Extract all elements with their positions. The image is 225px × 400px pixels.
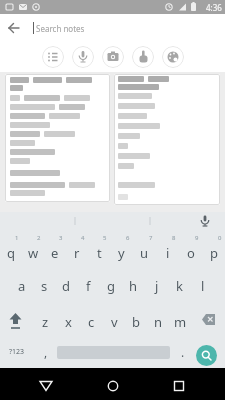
staticText: ,: [44, 344, 48, 360]
button[interactable]: c: [80, 300, 103, 335]
button[interactable]: [201, 212, 225, 230]
button[interactable]: z: [34, 300, 57, 335]
staticText: 0: [218, 234, 222, 242]
button[interactable]: j: [145, 265, 168, 300]
button[interactable]: 9: [179, 230, 202, 265]
staticText: 4:36: [206, 2, 222, 13]
button[interactable]: x: [57, 300, 80, 335]
button[interactable]: 7: [133, 230, 156, 265]
button[interactable]: h: [122, 265, 145, 300]
staticText: d: [62, 277, 70, 295]
staticText: a: [18, 277, 26, 295]
button[interactable]: n: [147, 300, 169, 335]
staticText: r: [74, 244, 80, 262]
staticText: k: [176, 277, 183, 295]
button[interactable]: v: [103, 300, 125, 335]
button[interactable]: 0: [202, 230, 225, 265]
staticText: i: [166, 244, 170, 262]
button[interactable]: [162, 46, 184, 68]
staticText: .: [181, 344, 185, 360]
button[interactable]: f: [77, 265, 99, 300]
staticText: y: [118, 244, 125, 262]
button[interactable]: [5, 74, 110, 202]
staticText: z: [42, 313, 49, 331]
staticText: 2: [37, 234, 41, 242]
staticText: l: [201, 277, 205, 295]
button[interactable]: [0, 14, 28, 42]
button[interactable]: 3: [44, 230, 66, 265]
button[interactable]: 4: [66, 230, 88, 265]
staticText: b: [132, 313, 140, 331]
staticText: u: [140, 244, 149, 262]
staticText: f: [86, 277, 91, 295]
button[interactable]: 8: [156, 230, 179, 265]
staticText: t: [97, 244, 102, 262]
staticText: 9: [195, 234, 199, 242]
staticText: x: [65, 313, 72, 331]
staticText: p: [210, 244, 218, 262]
staticText: o: [187, 244, 195, 262]
button[interactable]: k: [168, 265, 191, 300]
button[interactable]: Search notes: [0, 14, 225, 42]
staticText: m: [174, 313, 187, 331]
button[interactable]: l: [191, 265, 214, 300]
button[interactable]: [132, 46, 154, 68]
button[interactable]: [159, 368, 199, 400]
button[interactable]: [191, 300, 225, 335]
button[interactable]: ,: [34, 335, 57, 368]
staticText: q: [7, 244, 15, 262]
button[interactable]: [26, 368, 66, 400]
button[interactable]: [0, 300, 34, 335]
staticText: c: [88, 313, 95, 331]
button[interactable]: s: [33, 265, 55, 300]
staticText: h: [129, 277, 138, 295]
staticText: s: [41, 277, 48, 295]
button[interactable]: .: [172, 335, 194, 368]
button[interactable]: 2: [22, 230, 44, 265]
button[interactable]: [114, 74, 220, 205]
staticText: j: [155, 277, 159, 295]
button[interactable]: a: [11, 265, 33, 300]
staticText: g: [107, 277, 115, 295]
staticText: 8: [172, 234, 176, 242]
staticText: ?123: [9, 347, 25, 357]
button[interactable]: 5: [88, 230, 110, 265]
staticText: 7: [149, 234, 153, 242]
staticText: 3: [59, 234, 63, 242]
staticText: 4: [81, 234, 85, 242]
button[interactable]: m: [169, 300, 191, 335]
button[interactable]: b: [125, 300, 147, 335]
staticText: e: [51, 244, 59, 262]
button[interactable]: [42, 46, 64, 68]
staticText: 6: [126, 234, 130, 242]
button[interactable]: [196, 345, 217, 366]
button[interactable]: [93, 368, 133, 400]
button[interactable]: 6: [110, 230, 133, 265]
staticText: Search notes: [36, 23, 85, 34]
button[interactable]: g: [99, 265, 122, 300]
staticText: w: [28, 244, 39, 262]
staticText: n: [154, 313, 163, 331]
staticText: v: [111, 313, 118, 331]
button[interactable]: 1: [0, 230, 22, 265]
button[interactable]: ?123: [0, 335, 34, 368]
button[interactable]: d: [55, 265, 77, 300]
button[interactable]: [102, 46, 124, 68]
staticText: 5: [103, 234, 107, 242]
staticText: 1: [15, 234, 19, 242]
button[interactable]: [72, 46, 94, 68]
